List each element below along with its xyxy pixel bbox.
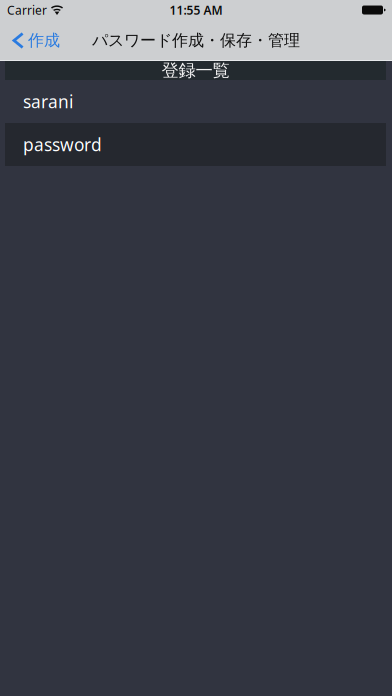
staticText: password (23, 133, 102, 156)
staticText: sarani (23, 90, 73, 113)
button[interactable]: sarani (0, 80, 392, 123)
button[interactable]: password (0, 123, 392, 166)
staticText: 登録一覧 (161, 60, 229, 81)
staticText: 11:55 AM (169, 2, 222, 18)
staticText: Carrier (7, 2, 47, 18)
button[interactable]: 作成 (0, 20, 70, 61)
staticText: 作成 (28, 31, 60, 50)
staticText: パスワード作成・保存・管理 (92, 31, 300, 50)
